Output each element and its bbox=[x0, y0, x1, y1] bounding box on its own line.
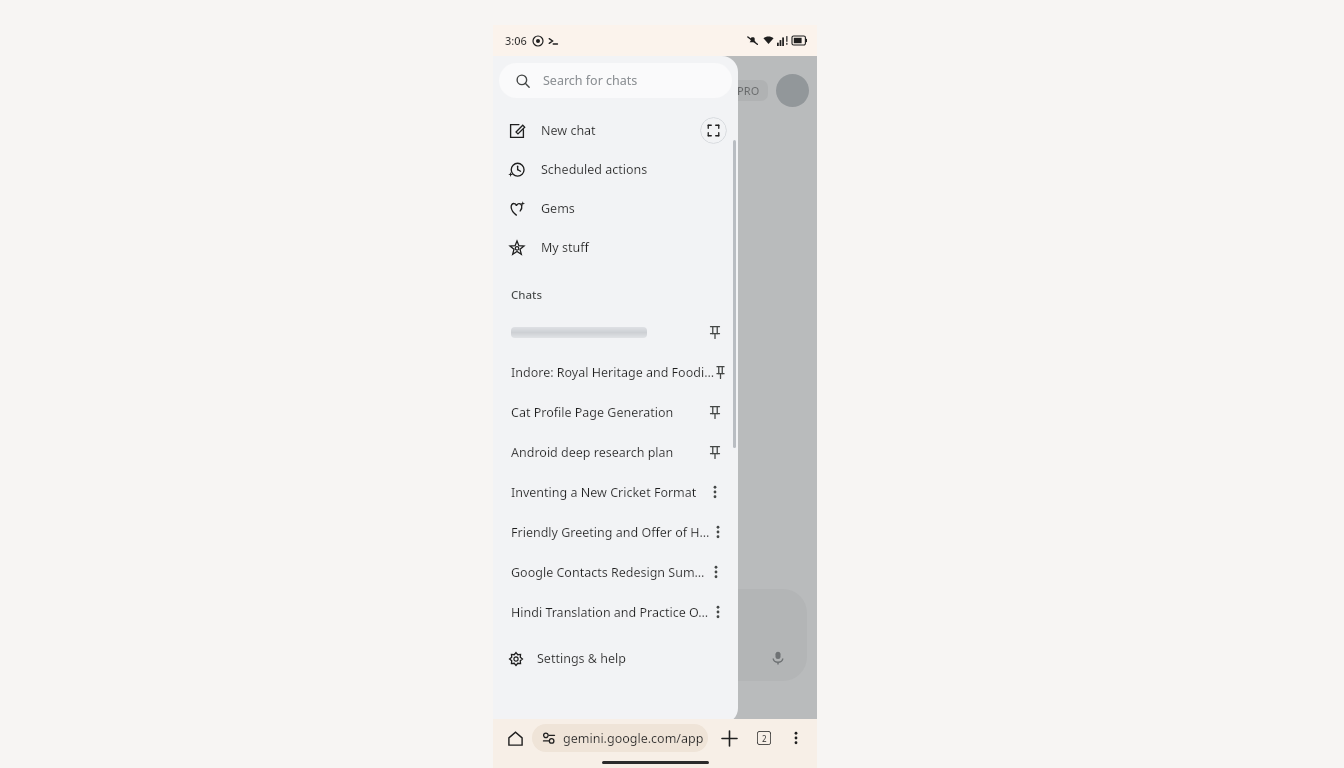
staticText: Hindi Translation and Practice O… bbox=[511, 604, 709, 621]
staticText: Settings & help bbox=[537, 650, 626, 667]
button[interactable]: Pinned bbox=[704, 321, 726, 343]
button[interactable]: Google Contacts Redesign Sum… bbox=[493, 552, 738, 592]
button[interactable]: Scan bbox=[700, 117, 727, 144]
button[interactable]: Home bbox=[502, 725, 528, 751]
button[interactable]: Pinned bbox=[704, 441, 726, 463]
button[interactable]: Hindi Translation and Practice O… bbox=[493, 592, 738, 632]
staticText: Google Contacts Redesign Sum… bbox=[511, 564, 705, 581]
button[interactable]: More options bbox=[709, 601, 726, 623]
button[interactable]: Friendly Greeting and Offer of H… bbox=[493, 512, 738, 552]
staticText: My stuff bbox=[541, 239, 589, 256]
staticText: gemini.google.com/app bbox=[563, 730, 704, 747]
staticText: Search for chats bbox=[543, 72, 638, 89]
button[interactable]: Pinned bbox=[715, 361, 726, 383]
button[interactable]: More options bbox=[704, 481, 726, 503]
button[interactable]: Scheduled actions bbox=[493, 150, 738, 189]
staticText: 3:06 bbox=[505, 33, 527, 48]
button[interactable]: Gems bbox=[493, 189, 738, 228]
button[interactable]: Tabs bbox=[751, 725, 777, 751]
staticText: Friendly Greeting and Offer of H… bbox=[511, 524, 710, 541]
staticText: 2 bbox=[762, 733, 767, 744]
button[interactable]: Search for chats bbox=[499, 63, 732, 98]
button[interactable]: More options bbox=[710, 521, 726, 543]
button[interactable]: Inventing a New Cricket Format bbox=[493, 472, 738, 512]
button[interactable]: Indore: Royal Heritage and Foodi… bbox=[493, 352, 738, 392]
staticText: Android deep research plan bbox=[511, 444, 674, 461]
button[interactable]: Pinned bbox=[493, 312, 738, 352]
button[interactable]: gemini.google.com/app bbox=[532, 724, 708, 752]
button[interactable]: New chat bbox=[493, 111, 738, 150]
button[interactable]: My stuff bbox=[493, 228, 738, 267]
staticText: New chat bbox=[541, 122, 596, 139]
button[interactable]: New tab bbox=[716, 725, 742, 751]
button[interactable]: Cat Profile Page Generation bbox=[493, 392, 738, 432]
button[interactable]: More options bbox=[705, 561, 726, 583]
staticText: Inventing a New Cricket Format bbox=[511, 484, 697, 501]
staticText: Indore: Royal Heritage and Foodi… bbox=[511, 364, 715, 381]
button[interactable]: Settings & help bbox=[493, 640, 738, 676]
staticText: PRO bbox=[737, 83, 760, 98]
staticText: Cat Profile Page Generation bbox=[511, 404, 674, 421]
staticText: Scheduled actions bbox=[541, 161, 648, 178]
button[interactable]: Android deep research plan bbox=[493, 432, 738, 472]
button[interactable]: Pinned bbox=[704, 401, 726, 423]
button[interactable]: More options bbox=[784, 726, 808, 750]
staticText: Chats bbox=[511, 287, 543, 303]
staticText: Gems bbox=[541, 200, 575, 217]
